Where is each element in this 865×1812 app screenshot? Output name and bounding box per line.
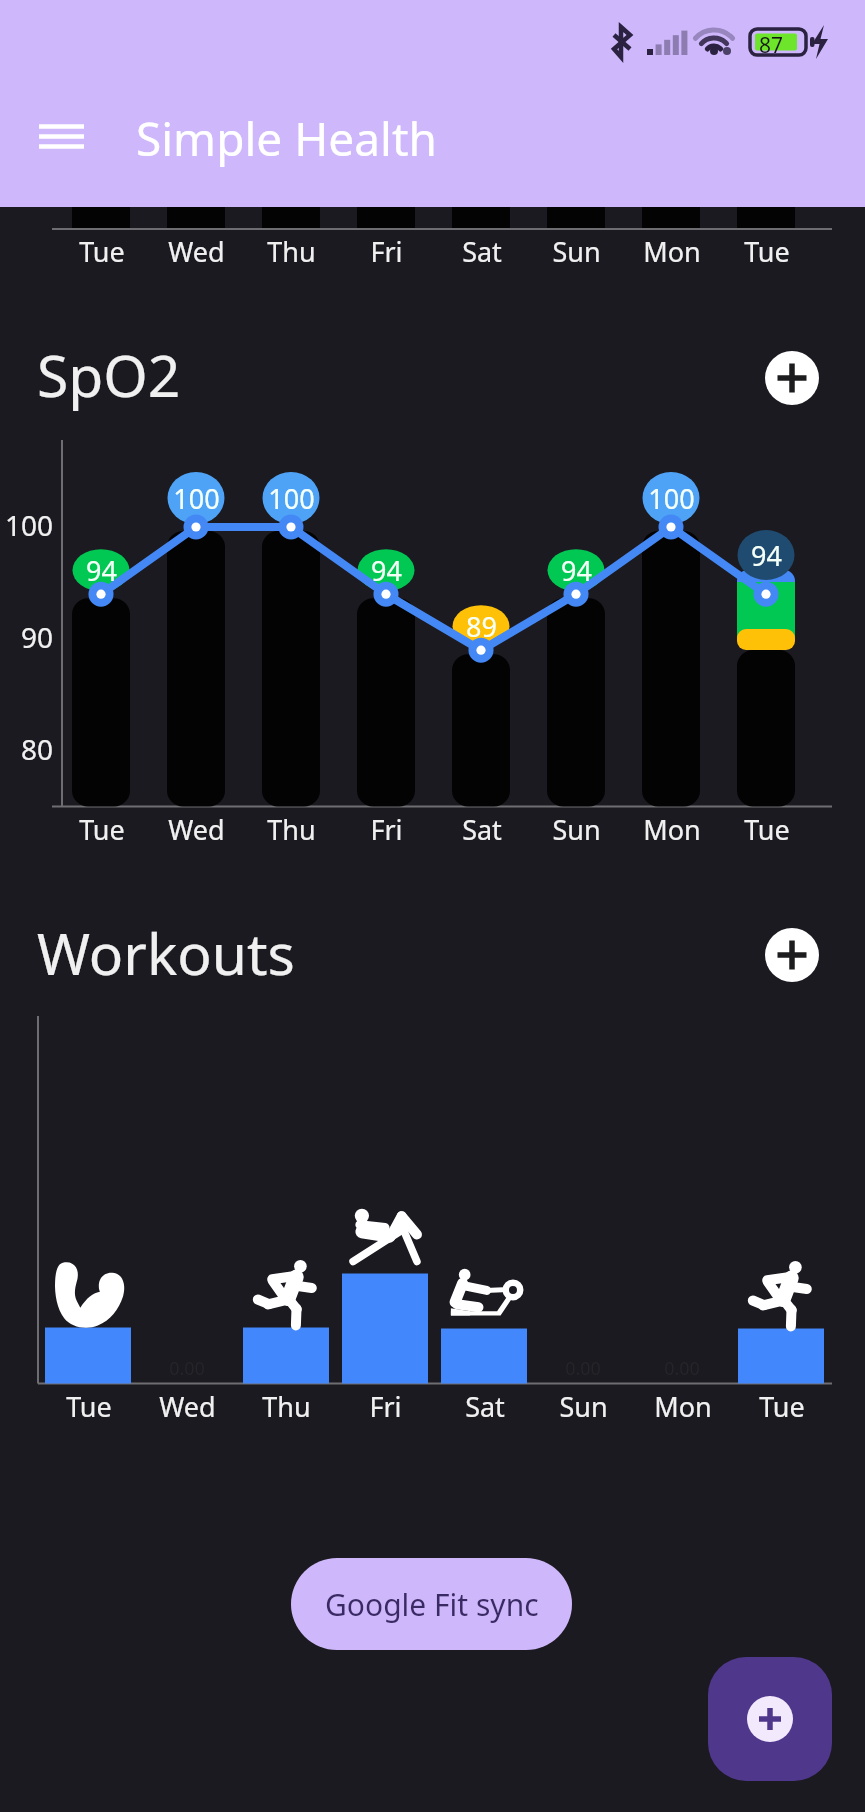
staticText: Fri: [370, 233, 403, 270]
button[interactable]: Add Workouts: [765, 928, 819, 982]
staticText: Tue: [66, 1388, 112, 1425]
staticText: 0.00: [565, 1356, 601, 1381]
staticText: Tue: [744, 233, 790, 270]
staticText: Thu: [262, 1388, 311, 1425]
staticText: 94: [371, 552, 402, 589]
staticText: 100: [648, 480, 695, 517]
staticText: Thu: [267, 811, 316, 848]
staticText: 90: [20, 618, 53, 656]
staticText: Simple Health: [136, 107, 437, 170]
staticText: Tue: [759, 1388, 805, 1425]
staticText: SpO2: [37, 336, 181, 414]
staticText: 80: [20, 730, 53, 768]
staticText: Sun: [552, 233, 601, 270]
staticText: 0.00: [664, 1356, 700, 1381]
staticText: 89: [466, 608, 497, 645]
staticText: Tue: [79, 811, 125, 848]
button[interactable]: Open navigation menu: [23, 105, 99, 181]
staticText: 94: [751, 537, 782, 574]
staticText: 94: [86, 552, 117, 589]
staticText: Thu: [267, 233, 316, 270]
button[interactable]: Add entry: [708, 1657, 832, 1781]
staticText: Sun: [559, 1388, 608, 1425]
staticText: Mon: [654, 1388, 712, 1425]
staticText: 100: [4, 506, 53, 544]
staticText: 94: [561, 552, 592, 589]
staticText: Wed: [168, 233, 225, 270]
button[interactable]: SpO2: [37, 336, 181, 414]
button[interactable]: Workouts: [37, 914, 295, 992]
staticText: Fri: [370, 811, 403, 848]
staticText: 100: [268, 480, 315, 517]
staticText: Tue: [79, 233, 125, 270]
staticText: 100: [173, 480, 220, 517]
staticText: Tue: [744, 811, 790, 848]
staticText: Sat: [462, 233, 502, 270]
staticText: 87: [759, 31, 784, 60]
staticText: Sun: [552, 811, 601, 848]
staticText: 0.00: [169, 1356, 205, 1381]
staticText: Sat: [462, 811, 502, 848]
staticText: Mon: [643, 811, 701, 848]
staticText: Fri: [369, 1388, 402, 1425]
staticText: Wed: [168, 811, 225, 848]
staticText: Mon: [643, 233, 701, 270]
staticText: Workouts: [37, 914, 295, 992]
staticText: Google Fit sync: [325, 1584, 539, 1625]
staticText: Sat: [465, 1388, 505, 1425]
staticText: Wed: [159, 1388, 216, 1425]
button[interactable]: Add SpO2: [765, 351, 819, 405]
button[interactable]: Google Fit sync: [291, 1558, 572, 1650]
